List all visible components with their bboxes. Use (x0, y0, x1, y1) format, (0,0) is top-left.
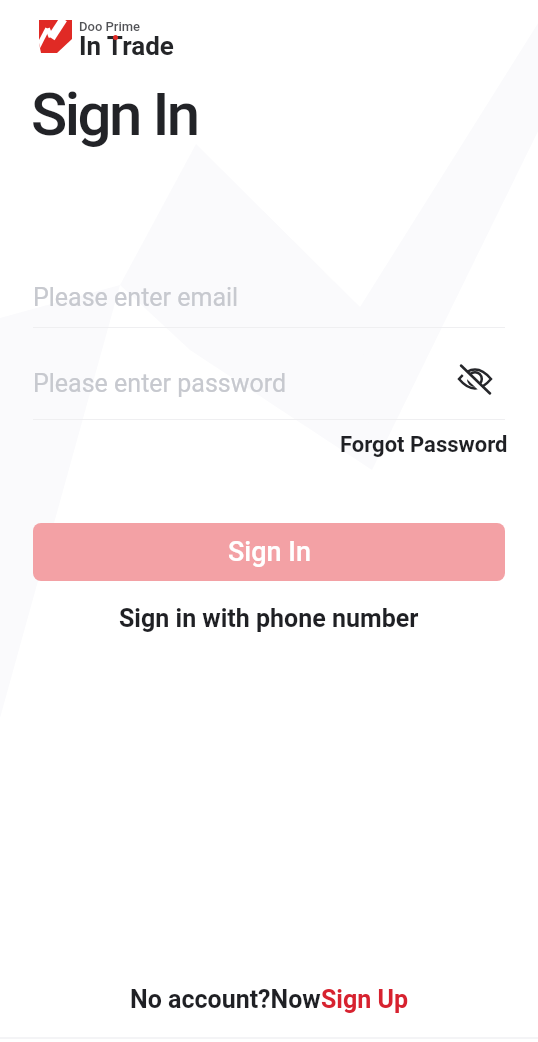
staticText: Please enter email (33, 283, 239, 312)
button[interactable]: Sign In (33, 523, 505, 581)
button[interactable]: Please enter password (33, 350, 505, 417)
button[interactable]: Sign Up (321, 985, 409, 1014)
staticText: Sign In (31, 79, 198, 149)
staticText: Doo Prime (79, 19, 141, 34)
staticText: Please enter password (33, 369, 287, 398)
staticText: In Trade (79, 31, 174, 61)
staticText: No account?Now (130, 985, 321, 1014)
button[interactable]: Forgot Password (340, 432, 508, 458)
button[interactable] (456, 360, 494, 398)
staticText: Sign In (228, 536, 311, 568)
button[interactable]: Sign in with phone number (119, 604, 419, 633)
button[interactable]: Please enter email (33, 268, 505, 327)
